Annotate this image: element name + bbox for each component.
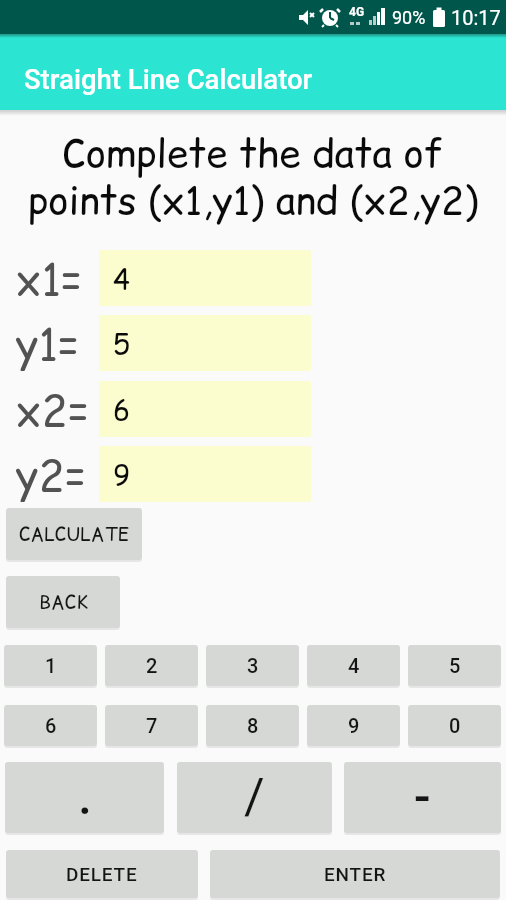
staticText: Straight Line Calculator [24, 63, 313, 95]
staticText: - [414, 768, 431, 827]
staticText: 6 [45, 714, 57, 737]
button[interactable]: 6 [4, 705, 97, 746]
staticText: 1 [45, 654, 57, 677]
staticText: BACK [39, 589, 88, 616]
button[interactable]: - [344, 762, 501, 833]
button[interactable]: 3 [206, 645, 299, 686]
staticText: DELETE [66, 863, 138, 885]
staticText: Complete the data of points (x1,y1) and … [0, 126, 506, 227]
button[interactable]: CALCULATE [6, 508, 142, 560]
button[interactable]: 4 [99, 250, 311, 306]
button[interactable]: / [177, 762, 332, 833]
staticText: 4G [349, 5, 365, 19]
staticText: 4 [348, 654, 360, 677]
button[interactable]: 5 [99, 315, 311, 371]
button[interactable]: BACK [6, 576, 120, 628]
button[interactable]: 8 [206, 705, 299, 746]
staticText: 8 [247, 714, 259, 737]
staticText: 90% [392, 7, 426, 28]
button[interactable]: 4 [307, 645, 400, 686]
staticText: . [78, 768, 92, 827]
staticText: y2= [16, 446, 87, 502]
staticText: / [244, 768, 265, 827]
staticText: y1= [16, 315, 80, 371]
button[interactable]: 2 [105, 645, 198, 686]
staticText: 10:17 [451, 6, 501, 29]
staticText: 0 [449, 714, 461, 737]
staticText: x1= [16, 250, 83, 306]
staticText: x2= [16, 381, 90, 437]
staticText: 3 [247, 654, 259, 677]
button[interactable]: ENTER [210, 850, 500, 898]
staticText: ENTER [324, 863, 387, 885]
staticText: 6 [113, 390, 131, 429]
button[interactable]: 1 [4, 645, 97, 686]
button[interactable]: 6 [99, 381, 311, 437]
button[interactable]: DELETE [6, 850, 198, 898]
button[interactable]: 0 [408, 705, 501, 746]
staticText: 7 [146, 714, 158, 737]
button[interactable]: 7 [105, 705, 198, 746]
staticText: 9 [113, 455, 131, 494]
staticText: 9 [348, 714, 360, 737]
button[interactable]: 9 [307, 705, 400, 746]
button[interactable]: 9 [99, 446, 311, 502]
staticText: 5 [113, 324, 131, 363]
button[interactable]: . [5, 762, 164, 833]
button[interactable]: 5 [408, 645, 501, 686]
staticText: 5 [449, 654, 461, 677]
staticText: 2 [146, 654, 158, 677]
staticText: CALCULATE [19, 521, 130, 548]
staticText: 4 [113, 259, 131, 298]
